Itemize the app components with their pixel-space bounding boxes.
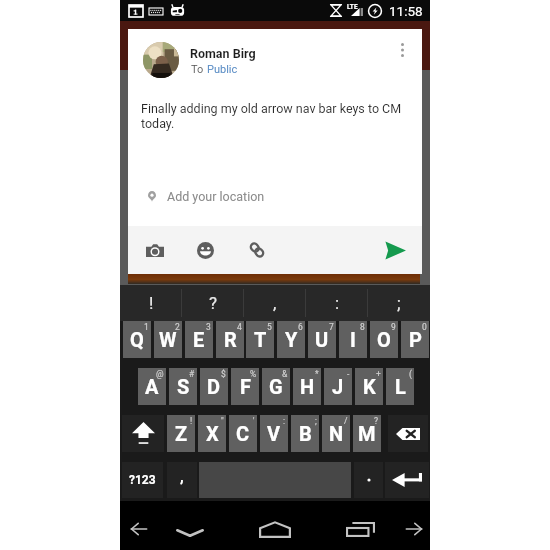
staticText: ? [209,293,218,313]
button[interactable]: R [216,321,244,358]
staticText: * [315,369,319,379]
button[interactable]: P [401,321,429,358]
button[interactable]: N [322,415,350,452]
button[interactable]: L [386,368,414,405]
button[interactable]: W [154,321,182,358]
staticText: ; [315,416,317,426]
staticText: B [299,422,312,445]
button[interactable]: Forward [392,501,436,550]
staticText: O [377,328,391,351]
staticText: Z [175,422,188,445]
staticText: ? [374,416,379,426]
staticText: 6 [298,322,303,332]
staticText: - [347,369,350,379]
button[interactable]: , [167,462,197,498]
staticText: , [180,468,184,486]
staticText: U [315,328,329,351]
staticText: , [273,293,277,313]
staticText: 7 [329,322,334,332]
staticText: & [282,369,288,379]
staticText: / [344,416,348,426]
button[interactable]: A [138,368,166,405]
staticText: 0 [422,322,427,332]
button[interactable]: : [306,285,368,321]
staticText: " [221,416,224,426]
staticText: ! [190,416,193,426]
button[interactable]: Add emoji [184,229,226,271]
staticText: @ [156,369,164,379]
staticText: I [350,328,356,351]
staticText: Add your location [167,189,265,204]
staticText: D [207,375,221,398]
staticText: Roman Birg [190,46,256,61]
button[interactable]: O [370,321,398,358]
staticText: ?123 [129,473,156,487]
staticText: 5 [267,322,272,332]
button[interactable]: J [324,368,352,405]
staticText: Y [285,328,298,351]
staticText: LTE [347,3,358,11]
button[interactable]: D [200,368,228,405]
staticText: G [269,375,283,398]
button[interactable]: , [244,285,306,321]
button[interactable]: C [229,415,257,452]
staticText: E [193,328,205,351]
button[interactable]: Q [123,321,151,358]
staticText: 8 [360,322,365,332]
button[interactable]: Z [167,415,195,452]
button[interactable]: Shift [122,415,164,452]
button[interactable]: Home [245,501,305,550]
staticText: 9 [391,322,396,332]
button[interactable]: ?123 [122,462,163,498]
button[interactable]: F [231,368,259,405]
button[interactable] [354,462,383,498]
staticText: + [376,369,381,379]
staticText: 2 [175,322,180,332]
staticText: Public [207,63,238,76]
button[interactable]: Hide keyboard [162,501,218,550]
button[interactable]: ; [368,285,430,321]
staticText: M [358,422,376,445]
button[interactable]: Backspace [388,415,428,452]
button[interactable]: S [169,368,197,405]
staticText: $ [221,369,226,379]
button[interactable]: T [246,321,274,358]
button[interactable]: ! [120,285,182,321]
button[interactable]: H [293,368,321,405]
staticText: F [240,375,251,398]
button[interactable]: Y [277,321,305,358]
button[interactable]: I [339,321,367,358]
button[interactable]: X [198,415,226,452]
button[interactable]: G [262,368,290,405]
button[interactable]: Add your location [128,179,422,213]
button[interactable]: V [260,415,288,452]
button[interactable]: Send [374,229,416,271]
button[interactable]: Back [117,501,161,550]
button[interactable]: M [353,415,381,452]
staticText: R [224,328,237,351]
button[interactable]: U [308,321,336,358]
button[interactable]: Add photo [134,229,176,271]
button[interactable]: ? [182,285,244,321]
staticText: # [189,369,195,379]
staticText: K [363,375,376,398]
staticText: P [409,328,422,351]
staticText: Q [130,328,144,351]
staticText: L [395,375,406,398]
button[interactable]: Recent apps [332,501,389,550]
button[interactable]: Add link [236,229,278,271]
staticText: ! [149,293,154,313]
staticText: Finally adding my old arrow nav bar keys… [141,101,409,131]
staticText: C [236,422,250,445]
button[interactable]: B [291,415,319,452]
staticText: 1 [144,322,149,332]
button[interactable]: K [355,368,383,405]
button[interactable]: E [185,321,213,358]
button[interactable]: Enter [385,462,429,498]
staticText: X [206,422,219,445]
staticText: ; [397,293,401,313]
button[interactable]: More options [390,38,414,62]
staticText: V [267,422,281,445]
staticText: W [159,328,177,351]
